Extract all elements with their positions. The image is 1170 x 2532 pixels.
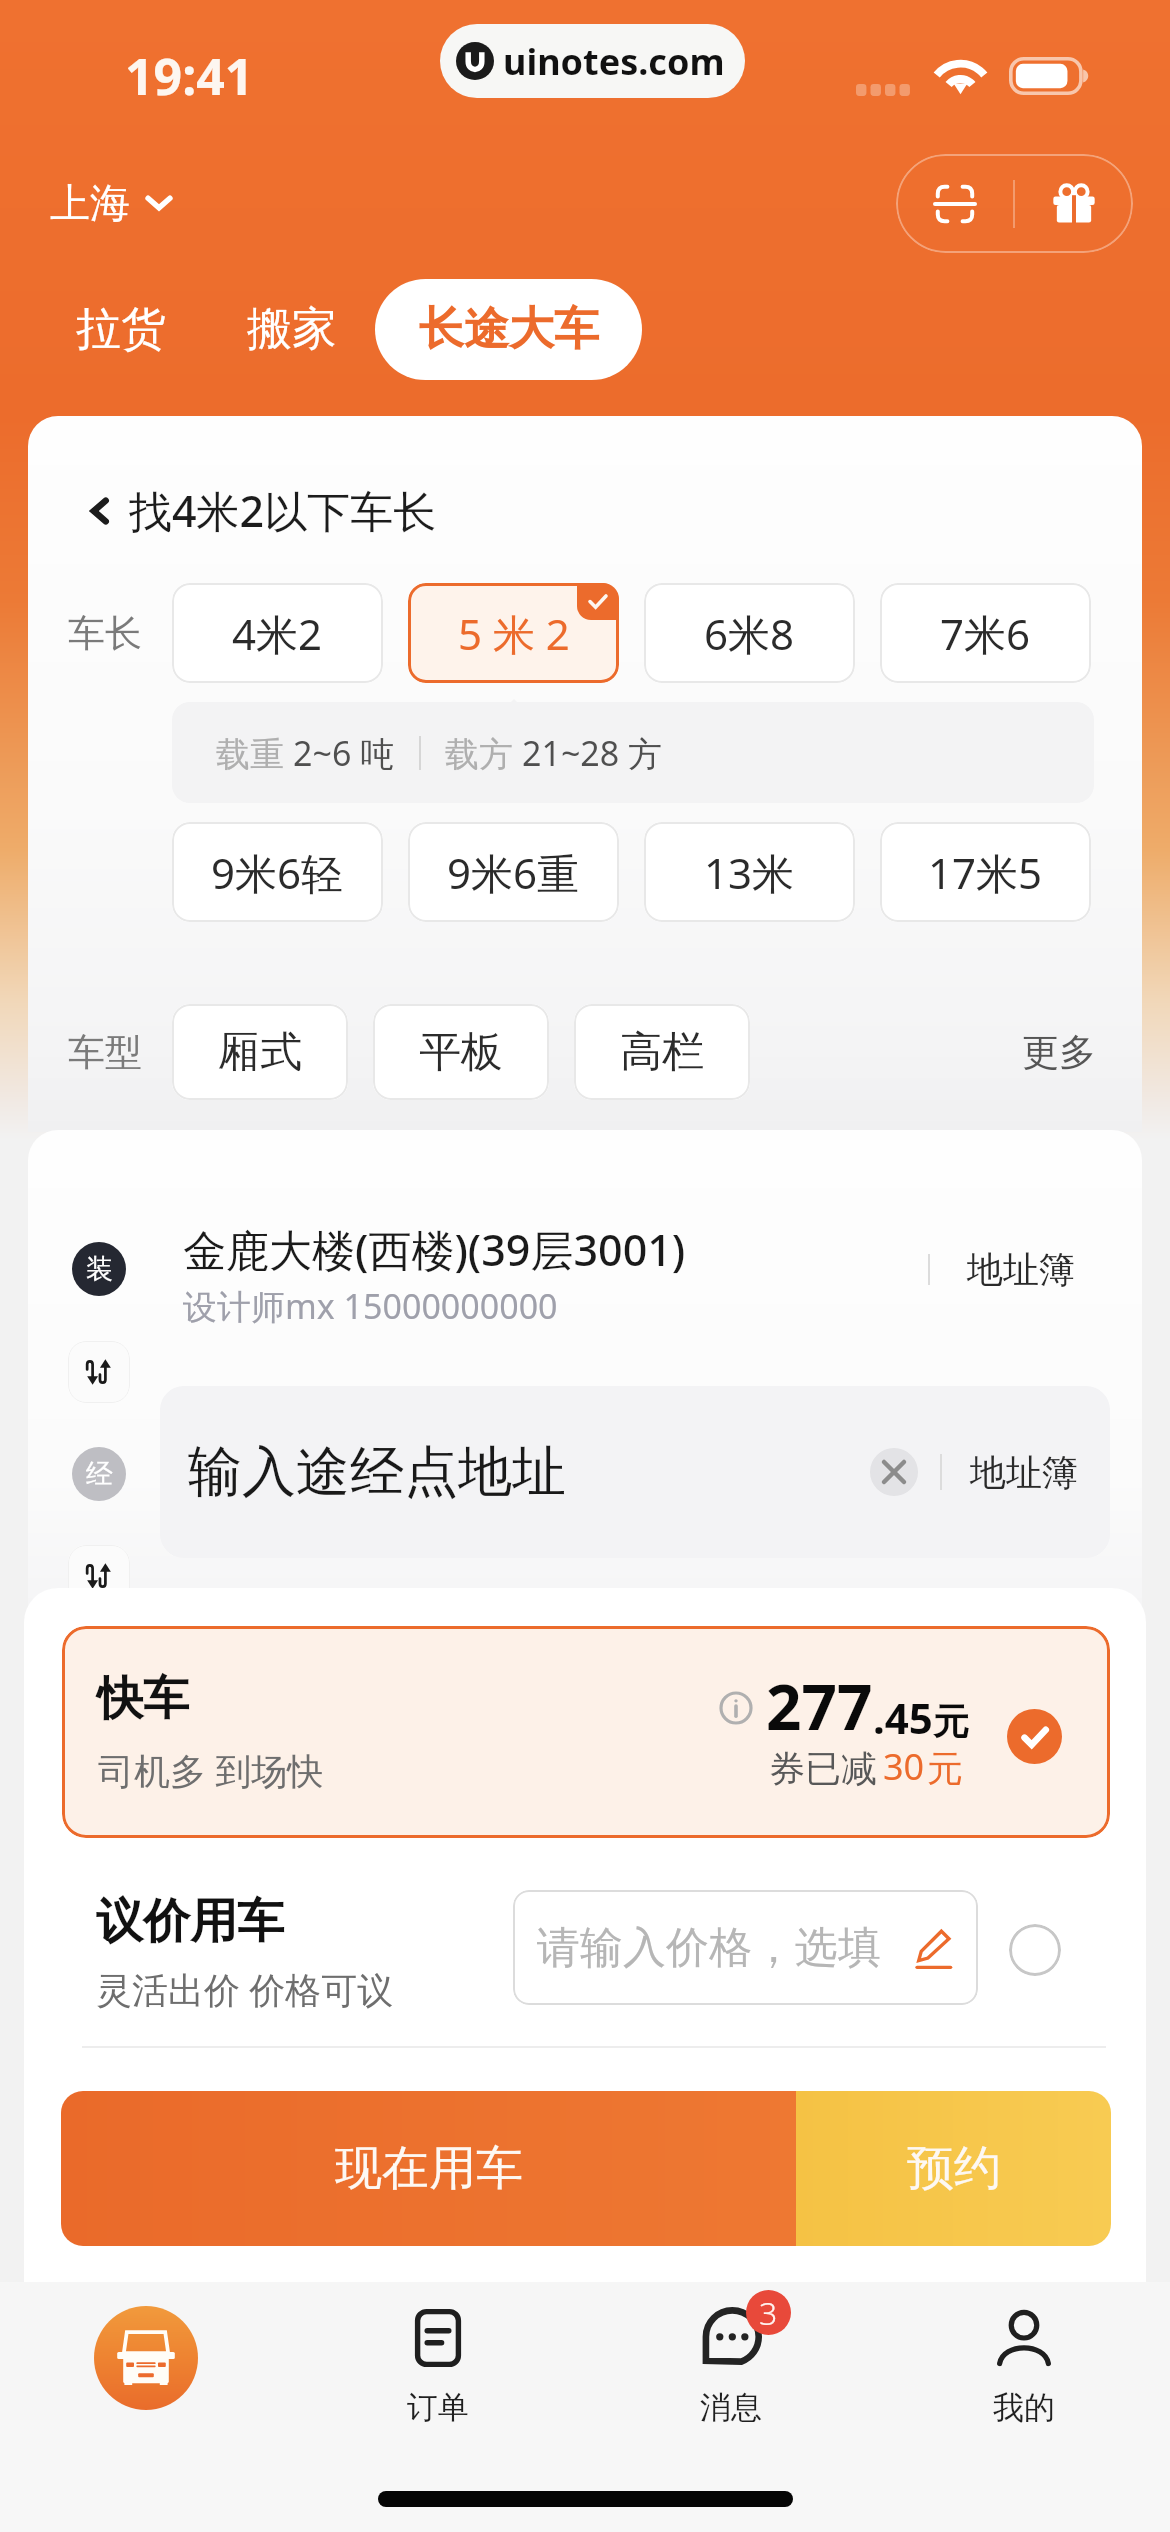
staticText: 长途大车: [419, 301, 599, 358]
staticText: 厢式: [218, 1026, 302, 1079]
button[interactable]: 高栏: [574, 1004, 750, 1100]
button[interactable]: 订单: [292, 2282, 584, 2532]
button[interactable]: 现在用车: [61, 2091, 796, 2246]
staticText: 高栏: [620, 1026, 704, 1079]
staticText: 元: [927, 1746, 963, 1791]
staticText: .45: [873, 1689, 933, 1746]
staticText: 消息: [700, 2388, 762, 2427]
staticText: 19:41: [125, 42, 254, 110]
button[interactable]: 3: [584, 2282, 877, 2532]
staticText: 载方: [445, 730, 522, 776]
staticText: 地址簿: [970, 1450, 1078, 1495]
button[interactable]: 我的: [877, 2282, 1170, 2532]
staticText: 请输入价格，选填: [537, 1921, 881, 1975]
button[interactable]: 请输入价格，选填: [513, 1890, 978, 2005]
staticText: 277: [766, 1664, 873, 1748]
button[interactable]: 5 米 2: [408, 583, 619, 683]
staticText: 金鹿大楼(西楼)(39层3001): [183, 1220, 686, 1279]
button[interactable]: 上海: [42, 168, 184, 238]
button[interactable]: 地址簿: [966, 1440, 1082, 1505]
button[interactable]: 快车: [62, 1626, 1110, 1838]
button[interactable]: Scan and gifts: [896, 154, 1133, 253]
staticText: 预约: [907, 2139, 1001, 2198]
button[interactable]: 更多: [1009, 1004, 1109, 1100]
staticText: 更多: [1022, 1029, 1096, 1076]
button[interactable]: Swap addresses: [68, 1545, 130, 1607]
button[interactable]: 6米8: [644, 583, 855, 683]
staticText: 30: [883, 1742, 925, 1791]
button[interactable]: 议价用车: [92, 1888, 398, 2018]
staticText: 议价用车: [96, 1892, 284, 1951]
staticText: 车长: [68, 610, 142, 657]
button[interactable]: 找4米2以下车长: [79, 473, 445, 548]
staticText: 9米6重: [447, 844, 580, 901]
staticText: 3: [759, 2291, 778, 2335]
button[interactable]: 拉货: [56, 279, 186, 380]
button[interactable]: 17米5: [880, 822, 1091, 922]
button[interactable]: 4米2: [172, 583, 383, 683]
button[interactable]: 长途大车: [375, 279, 642, 380]
staticText: 元: [933, 1699, 969, 1744]
staticText: 上海: [50, 178, 130, 228]
staticText: uinotes.com: [503, 37, 725, 86]
button[interactable]: Select negotiated price: [1009, 1924, 1061, 1976]
staticText: 找4米2以下车长: [129, 481, 437, 540]
button[interactable]: 平板: [373, 1004, 549, 1100]
staticText: 7米6: [940, 605, 1031, 662]
staticText: 17米5: [928, 844, 1043, 901]
staticText: 9米6轻: [211, 844, 344, 901]
button[interactable]: 13米: [644, 822, 855, 922]
staticText: 21~28 方: [522, 730, 663, 776]
staticText: 2~6 吨: [293, 730, 395, 776]
staticText: 6米8: [704, 605, 795, 662]
staticText: 4米2: [232, 605, 323, 662]
staticText: 券已减: [769, 1746, 877, 1791]
staticText: 装: [86, 1252, 113, 1286]
button[interactable]: 9米6重: [408, 822, 619, 922]
button[interactable]: Swap addresses: [68, 1341, 130, 1403]
button[interactable]: Clear: [870, 1448, 918, 1496]
button[interactable]: Book a truck: [94, 2306, 198, 2410]
staticText: 快车: [97, 1670, 189, 1728]
button[interactable]: 预约: [796, 2091, 1111, 2246]
staticText: 平板: [419, 1026, 503, 1079]
staticText: 车型: [68, 1029, 142, 1076]
staticText: 经: [86, 1457, 113, 1491]
staticText: 我的: [993, 2388, 1055, 2427]
staticText: 拉货: [76, 301, 166, 358]
button[interactable]: 7米6: [880, 583, 1091, 683]
button[interactable]: 输入途经点地址: [160, 1386, 1110, 1558]
button[interactable]: 地址簿: [957, 1242, 1085, 1296]
staticText: 13米: [704, 844, 795, 901]
staticText: 订单: [407, 2388, 469, 2427]
staticText: 设计师mx 15000000000: [183, 1283, 558, 1329]
button[interactable]: 搬家: [227, 279, 357, 380]
staticText: 输入途经点地址: [188, 1438, 566, 1506]
staticText: 现在用车: [335, 2139, 523, 2198]
button[interactable]: 9米6轻: [172, 822, 383, 922]
staticText: 灵活出价 价格可议: [96, 1965, 394, 2014]
staticText: 搬家: [247, 301, 337, 358]
staticText: 载重: [216, 730, 293, 776]
staticText: 司机多 到场快: [98, 1746, 324, 1795]
staticText: 5 米 2: [458, 605, 570, 662]
button[interactable]: 厢式: [172, 1004, 348, 1100]
staticText: 地址簿: [967, 1247, 1075, 1292]
